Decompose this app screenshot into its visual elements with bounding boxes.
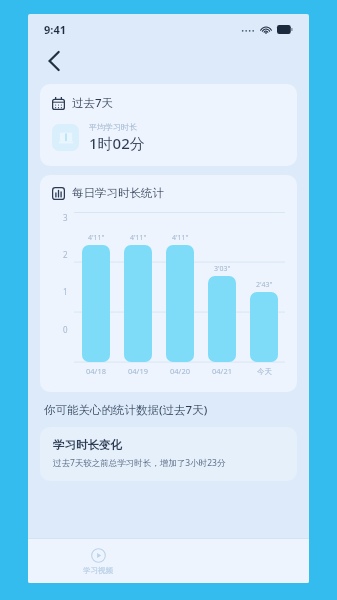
- staticText: 学习视频: [83, 566, 113, 575]
- staticText: 9:41: [44, 22, 66, 37]
- staticText: 过去7天较之前总学习时长，增加了3小时23分: [53, 457, 226, 469]
- staticText: 4'11": [88, 233, 105, 243]
- staticText: 4'11": [172, 233, 189, 243]
- staticText: 3'03": [214, 264, 231, 274]
- staticText: 过去7天: [72, 95, 114, 111]
- staticText: 每日学习时长统计: [72, 186, 164, 200]
- staticText: 04/21: [212, 366, 232, 376]
- staticText: 3: [63, 212, 68, 223]
- button[interactable]: 过去7天: [40, 84, 297, 166]
- staticText: 平均学习时长: [89, 122, 137, 132]
- staticText: 2'43": [256, 280, 273, 290]
- staticText: 2: [63, 249, 68, 260]
- button[interactable]: Back: [38, 45, 70, 77]
- button[interactable]: 学习时长变化: [40, 427, 297, 481]
- staticText: 04/20: [170, 366, 190, 376]
- staticText: 04/18: [86, 366, 106, 376]
- staticText: 你可能关心的统计数据(过去7天): [44, 402, 208, 418]
- staticText: 04/19: [128, 366, 148, 376]
- staticText: 4'11": [130, 233, 147, 243]
- staticText: 1: [63, 286, 68, 297]
- button[interactable]: 学习视频: [28, 539, 168, 583]
- staticText: 0: [63, 324, 68, 335]
- staticText: 1时02分: [89, 133, 145, 153]
- staticText: 今天: [257, 367, 272, 376]
- staticText: 学习时长变化: [53, 438, 122, 452]
- button[interactable]: 每日学习时长统计: [40, 175, 297, 392]
